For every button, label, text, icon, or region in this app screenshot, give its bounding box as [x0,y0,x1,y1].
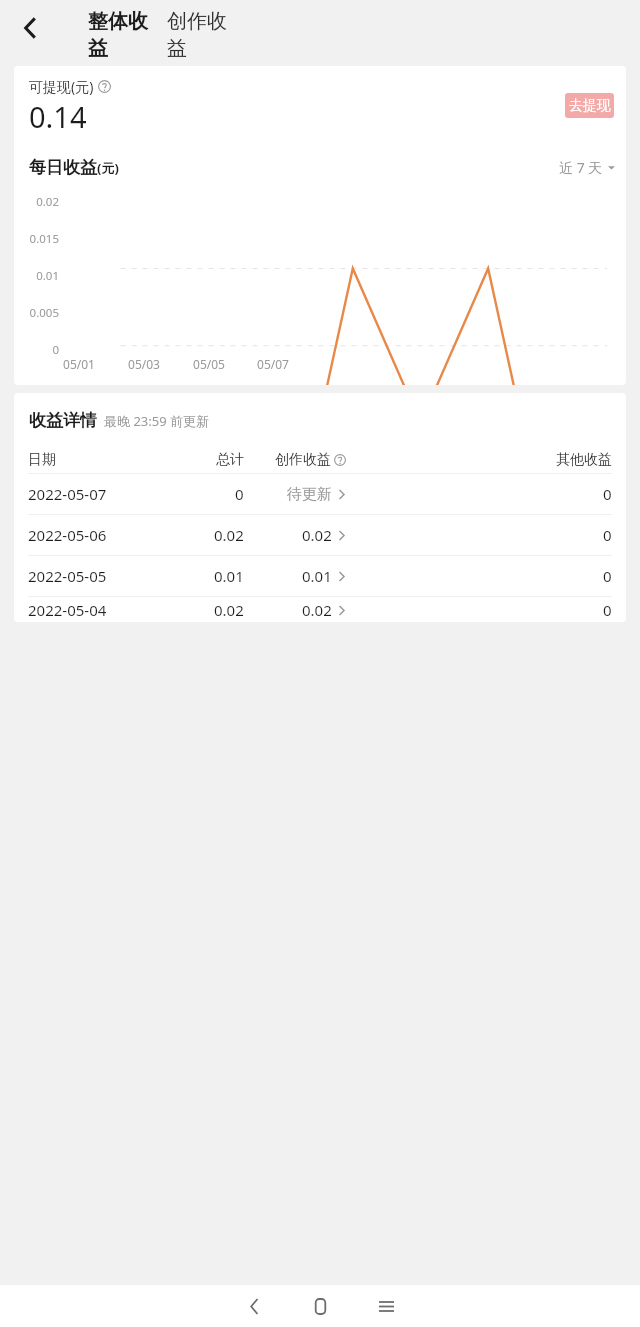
staticText: (元) [97,159,119,177]
button[interactable]: 整体收益 [88,0,163,62]
button[interactable]: Help [98,80,111,93]
staticText: 0.02 [302,600,332,620]
staticText: 0 [52,342,59,358]
button[interactable]: About creation earnings [334,454,346,466]
staticText: 收益详情 [29,410,97,431]
staticText: 2022-05-05 [28,566,107,586]
staticText: 总计 [216,451,244,469]
staticText: 0 [603,525,612,545]
staticText: 0.02 [302,525,332,545]
staticText: 待更新 [287,485,332,504]
staticText: 整体收益 [88,9,163,61]
staticText: 0.005 [29,305,59,321]
staticText: 日期 [28,451,56,469]
button[interactable]: Home [287,1285,353,1327]
staticText: 每日收益 [29,157,97,178]
button[interactable]: Back [4,2,56,54]
staticText: 每周四 9:00～23:00 可提现 [29,142,186,160]
staticText: 创作收益 [275,451,331,469]
staticText: 0.02 [214,600,244,620]
button[interactable]: 2022-05-04 [14,597,626,622]
staticText: 最晚 23:59 前更新 [104,412,209,430]
staticText: 0.015 [29,231,59,247]
button[interactable]: 2022-05-07 [14,474,626,514]
staticText: 0.14 [29,97,87,136]
staticText: 创作收益 [167,9,242,61]
staticText: 2022-05-07 [28,484,107,504]
staticText: 05/01 [63,356,95,372]
button[interactable]: 去提现 [565,93,614,118]
staticText: 可提现(元) [29,77,94,96]
staticText: 0.02 [36,194,59,210]
staticText: 0 [603,484,612,504]
staticText: 0.01 [302,566,332,586]
staticText: 0.01 [36,268,59,284]
staticText: 05/03 [128,356,160,372]
button[interactable]: Recent apps [353,1285,419,1327]
staticText: 0.01 [214,566,244,586]
button[interactable]: 2022-05-06 [14,515,626,555]
staticText: 0.02 [214,525,244,545]
staticText: 0 [603,600,612,620]
staticText: 2022-05-04 [28,600,107,620]
staticText: 近 7 天 [559,158,603,177]
staticText: 05/07 [257,356,289,372]
staticText: 去提现 [569,97,611,115]
button[interactable]: 2022-05-05 [14,556,626,596]
staticText: 0 [603,566,612,586]
button[interactable]: Back [221,1285,287,1327]
button[interactable]: 近 7 天 [559,158,615,177]
staticText: 0 [235,484,244,504]
button[interactable]: 创作收益 [167,0,242,62]
staticText: 2022-05-06 [28,525,107,545]
staticText: 其他收益 [556,451,612,469]
staticText: 05/05 [193,356,225,372]
